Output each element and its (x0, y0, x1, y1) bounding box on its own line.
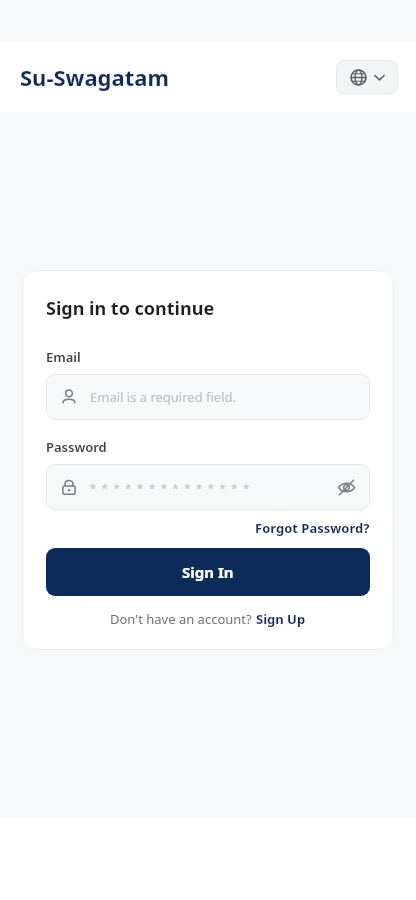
button[interactable]: Show password (337, 478, 356, 497)
staticText: Su-Swagatam (20, 62, 169, 92)
button[interactable]: Forgot Password? (255, 519, 370, 537)
button[interactable]: Sign Up (256, 610, 306, 628)
button[interactable]: Email field (46, 374, 370, 420)
staticText: Password (46, 438, 107, 456)
staticText: * * * * * * * * * * * * * * (90, 480, 250, 495)
staticText: Email is a required field. (90, 388, 237, 406)
staticText: Don't have an account? (110, 610, 256, 628)
button[interactable]: Change language (336, 60, 398, 94)
button[interactable]: Sign In (46, 548, 370, 596)
staticText: Sign In (182, 562, 234, 582)
staticText: Sign in to continue (46, 296, 215, 321)
button[interactable]: Password field (46, 464, 370, 510)
staticText: Email (46, 348, 81, 366)
